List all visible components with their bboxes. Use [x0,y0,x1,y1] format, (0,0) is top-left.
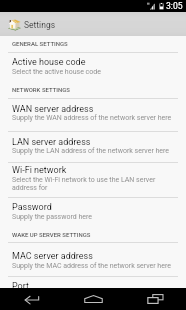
staticText: GENERAL SETTINGS [12,40,180,47]
button[interactable]: WAN server address [0,98,186,131]
staticText: 3:05 [166,1,183,11]
button[interactable]: Port [0,276,186,288]
button[interactable]: Home [62,288,124,310]
staticText: Select the Wi-Fi network to use the LAN … [12,176,176,192]
staticText: Supply the password here [12,213,180,221]
button[interactable]: LAN server address [0,132,186,162]
staticText: WAKE UP SERVER SETTINGS [12,231,180,238]
staticText: Password [12,202,180,213]
staticText: WAN server address [12,104,180,115]
staticText: Supply the WAN address of the network se… [12,114,180,122]
staticText: Select the active house code [12,68,180,76]
button[interactable]: Settings [0,18,186,31]
button[interactable]: Back [0,288,62,310]
staticText: Wi-Fi network [12,165,180,176]
staticText: NETWORK SETTINGS [12,86,180,93]
staticText: Settings [24,20,56,30]
button[interactable]: MAC server address [0,243,186,275]
staticText: Supply the LAN address of the network se… [12,147,180,155]
staticText: Supply the MAC address of the network se… [12,262,180,270]
button[interactable]: Recent apps [124,288,186,310]
staticText: Active house code [12,57,180,68]
button[interactable]: Wi-Fi network [0,163,186,197]
staticText: Port [12,281,180,292]
button[interactable]: Password [0,198,186,228]
staticText: MAC server address [12,251,180,262]
staticText: LAN server address [12,137,180,148]
button[interactable]: Active house code [0,53,186,82]
